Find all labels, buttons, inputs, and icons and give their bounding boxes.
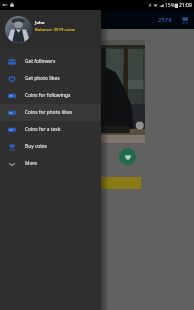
staticText: 21:09 (179, 2, 192, 9)
button[interactable]: Buy coins (0, 138, 101, 155)
button[interactable]: Coins for followings (0, 87, 101, 104)
button[interactable]: Coins for a task (0, 121, 101, 138)
button[interactable]: Get photo likes (0, 70, 101, 87)
staticText: Coins for photo likes (25, 109, 73, 116)
staticText: Get followers (25, 58, 56, 65)
staticText: More (25, 160, 38, 167)
button[interactable]: Like (119, 148, 136, 165)
staticText: 15% (165, 2, 175, 9)
button[interactable]: More (0, 155, 101, 172)
staticText: Buy coins (25, 143, 47, 150)
staticText: Get photo likes (25, 75, 60, 82)
button[interactable]: Coins for photo likes (0, 104, 101, 121)
staticText: Coins for followings (25, 92, 71, 99)
button[interactable]: Get followers (0, 53, 101, 70)
staticText: 2579 (158, 16, 172, 24)
button[interactable]: Buy coins (179, 14, 190, 25)
staticText: Balance: 2579 coins (35, 27, 76, 33)
staticText: Coins for a task (25, 126, 61, 133)
staticText: John (35, 20, 45, 26)
